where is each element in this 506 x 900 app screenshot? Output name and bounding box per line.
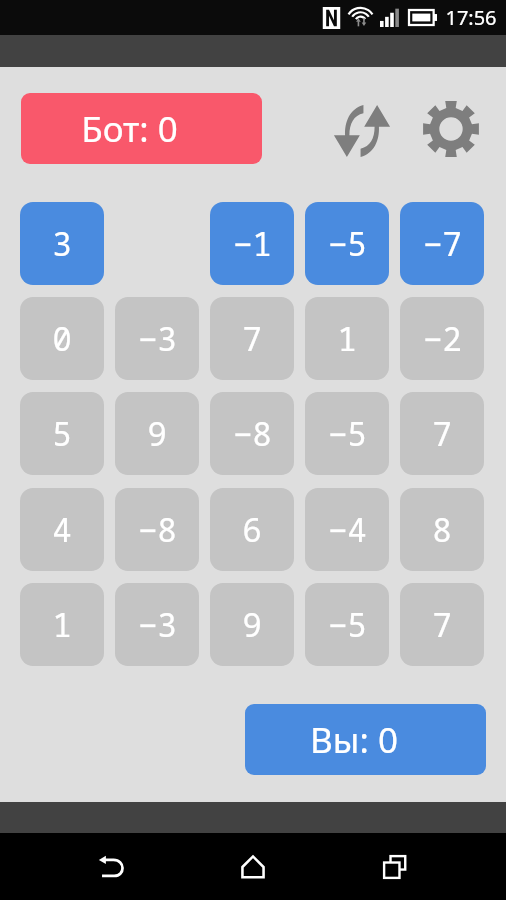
button[interactable]: −3 [115,583,199,666]
button[interactable]: −4 [305,488,389,571]
button[interactable]: −3 [115,297,199,380]
staticText: 7 [432,603,452,647]
staticText: 7 [242,317,262,361]
button[interactable]: 4 [20,488,104,571]
staticText: 9 [147,412,167,456]
button[interactable]: Бот: 0 [21,93,262,164]
staticText: −8 [233,412,272,456]
staticText: 0 [52,317,72,361]
staticText: 1 [52,603,72,647]
button[interactable]: Settings [414,92,488,166]
staticText: −8 [138,508,177,552]
button[interactable]: 6 [210,488,294,571]
staticText: −3 [138,317,177,361]
staticText: −7 [423,222,462,266]
button[interactable]: −8 [115,488,199,571]
button[interactable]: 9 [115,392,199,475]
staticText: 7 [432,412,452,456]
button[interactable]: 1 [20,583,104,666]
button[interactable]: Recent apps [364,836,426,898]
staticText: 17:56 [445,4,497,31]
button[interactable]: 3 [20,202,104,285]
staticText: 9 [242,603,262,647]
staticText: Вы: 0 [310,716,398,764]
staticText: Бот: 0 [81,105,178,153]
button[interactable]: −8 [210,392,294,475]
staticText: −4 [328,508,367,552]
staticText: −5 [328,412,367,456]
button[interactable]: Back [80,836,142,898]
button[interactable]: −7 [400,202,484,285]
staticText: 6 [242,508,262,552]
staticText: 8 [432,508,452,552]
staticText: 3 [52,222,72,266]
button[interactable]: −1 [210,202,294,285]
button[interactable]: 1 [305,297,389,380]
button[interactable]: −5 [305,202,389,285]
button[interactable]: −2 [400,297,484,380]
staticText: −1 [233,222,272,266]
staticText: 5 [52,412,72,456]
button[interactable]: 0 [20,297,104,380]
staticText: −5 [328,603,367,647]
button[interactable]: Вы: 0 [245,704,486,775]
staticText: −3 [138,603,177,647]
staticText: 4 [52,508,72,552]
button[interactable]: −5 [305,583,389,666]
staticText: −2 [423,317,462,361]
button[interactable]: 8 [400,488,484,571]
button[interactable]: 9 [210,583,294,666]
button[interactable]: 7 [210,297,294,380]
button[interactable]: 7 [400,392,484,475]
button[interactable]: −5 [305,392,389,475]
button[interactable]: Swap numbers [326,95,398,167]
staticText: −5 [328,222,367,266]
button[interactable]: 5 [20,392,104,475]
button[interactable]: 7 [400,583,484,666]
button[interactable]: Home [222,836,284,898]
staticText: 1 [337,317,357,361]
